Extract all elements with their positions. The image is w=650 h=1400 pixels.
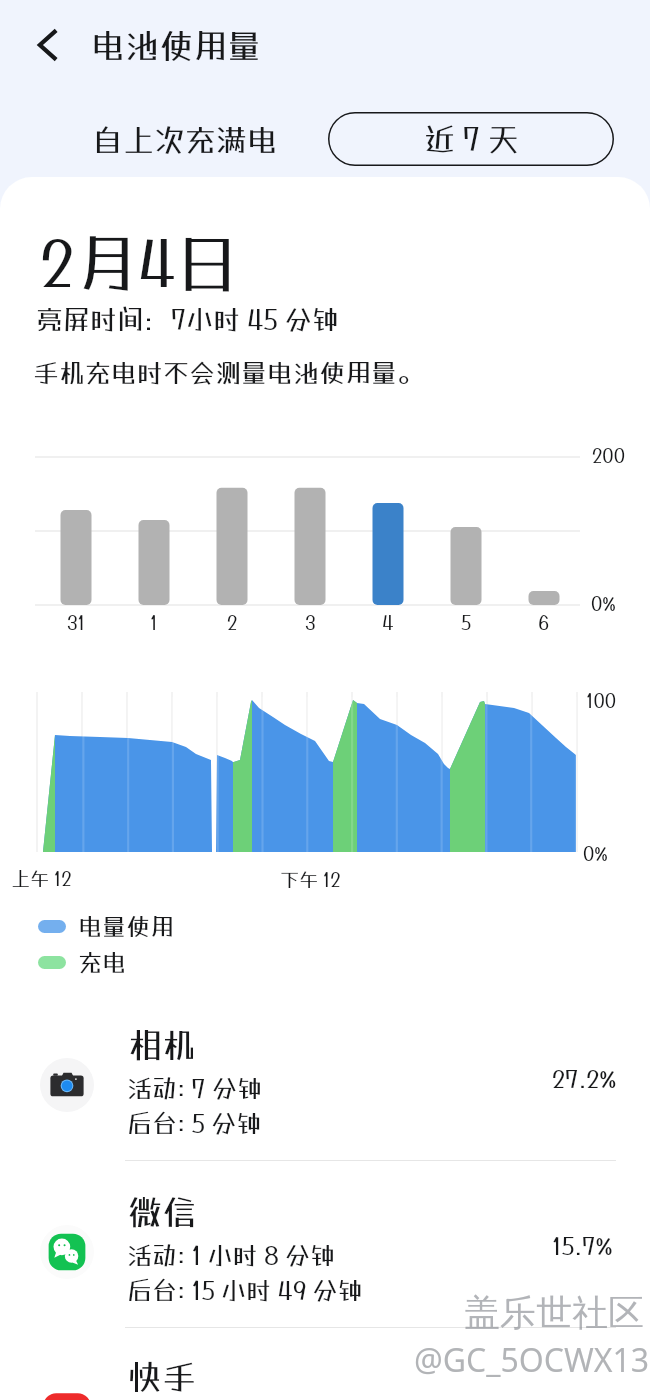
button[interactable]: 自上次充满电 bbox=[92, 122, 278, 159]
staticText: 31 bbox=[67, 611, 86, 633]
staticText: 2月4日 bbox=[40, 225, 239, 299]
button[interactable]: Back bbox=[26, 23, 70, 67]
button[interactable]: 快手 bbox=[0, 1356, 650, 1400]
staticText: 手机充电时不会测量电池使用量。 bbox=[33, 357, 424, 388]
staticText: 27.2% bbox=[552, 1064, 617, 1092]
staticText: 上午 12 bbox=[11, 867, 72, 889]
staticText: 相机 bbox=[128, 1025, 196, 1065]
staticText: 3 bbox=[305, 611, 316, 633]
staticText: 后台: 15 小时 49 分钟 bbox=[127, 1275, 363, 1304]
staticText: 下午 12 bbox=[280, 868, 341, 890]
staticText: 5 bbox=[461, 611, 472, 633]
staticText: 4 bbox=[382, 611, 394, 633]
staticText: 快手 bbox=[128, 1357, 196, 1397]
staticText: 2 bbox=[227, 611, 238, 633]
staticText: 1 bbox=[150, 611, 158, 633]
staticText: 微信 bbox=[128, 1192, 196, 1232]
staticText: 电池使用量 bbox=[91, 26, 261, 66]
staticText: 电量使用 bbox=[78, 912, 174, 940]
staticText: 亮屏时间：7小时 45 分钟 bbox=[36, 303, 339, 335]
staticText: 15.7% bbox=[552, 1231, 613, 1259]
staticText: 0% bbox=[583, 842, 608, 864]
button[interactable]: 相机 bbox=[0, 1024, 650, 1191]
staticText: 6 bbox=[538, 611, 550, 633]
staticText: 100 bbox=[586, 689, 617, 711]
button[interactable]: 微信 bbox=[0, 1191, 650, 1358]
staticText: 活动: 7 分钟 bbox=[127, 1073, 262, 1102]
staticText: @GC_5OCWX13 bbox=[414, 1338, 650, 1382]
staticText: 自上次充满电 bbox=[92, 122, 278, 159]
staticText: 200 bbox=[592, 444, 625, 466]
staticText: 盖乐世社区 bbox=[464, 1290, 644, 1335]
staticText: 充电 bbox=[78, 948, 126, 976]
staticText: 0% bbox=[591, 592, 616, 614]
staticText: 后台: 5 分钟 bbox=[127, 1108, 262, 1137]
button[interactable]: 近 7 天 bbox=[328, 112, 614, 166]
staticText: 近 7 天 bbox=[424, 121, 519, 158]
staticText: 活动: 1 小时 8 分钟 bbox=[127, 1240, 336, 1269]
